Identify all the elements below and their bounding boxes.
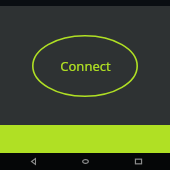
button[interactable]: Connect: [32, 35, 138, 97]
button[interactable]: Recent apps: [118, 153, 158, 170]
staticText: Connect: [60, 57, 111, 75]
button[interactable]: Home: [65, 153, 105, 170]
button[interactable]: Back: [13, 153, 53, 170]
